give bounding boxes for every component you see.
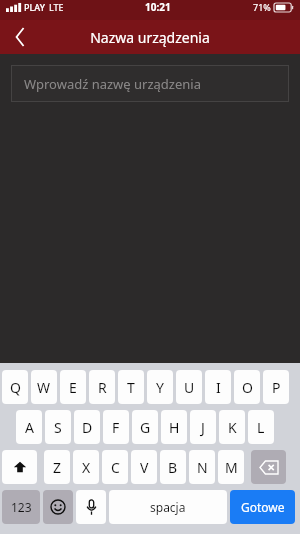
staticText: W xyxy=(37,378,51,397)
staticText: G xyxy=(140,418,151,437)
staticText: R xyxy=(98,378,107,397)
button[interactable]: E xyxy=(60,370,86,404)
button[interactable]: I xyxy=(205,370,231,404)
staticText: I xyxy=(216,378,221,397)
staticText: V xyxy=(140,458,149,477)
staticText: 71% xyxy=(253,1,271,13)
button[interactable]: Y xyxy=(147,370,173,404)
button[interactable]: Dyktowanie xyxy=(76,490,106,524)
staticText: P xyxy=(272,378,281,397)
button[interactable]: Shift xyxy=(2,450,37,484)
button[interactable]: R xyxy=(89,370,115,404)
button[interactable]: O xyxy=(234,370,260,404)
staticText: S xyxy=(54,418,62,437)
button[interactable]: Backspace xyxy=(251,450,286,484)
button[interactable]: C xyxy=(102,450,128,484)
staticText: H xyxy=(169,418,180,437)
staticText: L xyxy=(257,418,265,437)
button[interactable]: M xyxy=(218,450,244,484)
button[interactable]: L xyxy=(248,410,274,444)
staticText: X xyxy=(82,458,91,477)
button[interactable]: V xyxy=(131,450,157,484)
button[interactable]: S xyxy=(45,410,71,444)
staticText: LTE xyxy=(49,1,64,13)
button[interactable]: K xyxy=(219,410,245,444)
button[interactable]: spacja xyxy=(109,490,227,524)
button[interactable]: T xyxy=(118,370,144,404)
staticText: 123 xyxy=(11,499,32,515)
staticText: M xyxy=(225,458,238,477)
button[interactable]: Emoji xyxy=(43,490,73,524)
staticText: spacja xyxy=(150,499,186,515)
button[interactable]: Wstecz xyxy=(0,20,40,54)
button[interactable]: Z xyxy=(44,450,70,484)
button[interactable]: W xyxy=(31,370,57,404)
button[interactable]: B xyxy=(160,450,186,484)
staticText: E xyxy=(69,378,77,397)
staticText: PLAY xyxy=(24,1,45,13)
button[interactable]: N xyxy=(189,450,215,484)
button[interactable]: X xyxy=(73,450,99,484)
staticText: F xyxy=(112,418,120,437)
staticText: 10:21 xyxy=(145,0,171,14)
button[interactable]: Gotowe xyxy=(230,490,295,524)
button[interactable]: 123 xyxy=(2,490,40,524)
staticText: Y xyxy=(156,378,164,397)
staticText: Nazwa urządzenia xyxy=(90,28,210,47)
staticText: U xyxy=(184,378,195,397)
button[interactable]: F xyxy=(103,410,129,444)
staticText: Gotowe xyxy=(241,499,285,515)
staticText: Z xyxy=(53,458,62,477)
button[interactable]: U xyxy=(176,370,202,404)
staticText: Wprowadź nazwę urządzenia xyxy=(24,75,201,93)
staticText: J xyxy=(201,418,205,437)
staticText: Q xyxy=(10,378,21,397)
staticText: T xyxy=(127,378,135,397)
staticText: K xyxy=(228,418,237,437)
button[interactable]: A xyxy=(16,410,42,444)
staticText: B xyxy=(168,458,178,477)
button[interactable]: P xyxy=(263,370,289,404)
staticText: O xyxy=(242,378,253,397)
button[interactable]: H xyxy=(161,410,187,444)
button[interactable]: G xyxy=(132,410,158,444)
button[interactable]: Wprowadź nazwę urządzenia xyxy=(11,65,289,102)
staticText: A xyxy=(25,418,34,437)
button[interactable]: Q xyxy=(2,370,28,404)
staticText: N xyxy=(197,458,208,477)
button[interactable]: D xyxy=(74,410,100,444)
button[interactable]: J xyxy=(190,410,216,444)
staticText: D xyxy=(82,418,93,437)
staticText: C xyxy=(111,458,120,477)
